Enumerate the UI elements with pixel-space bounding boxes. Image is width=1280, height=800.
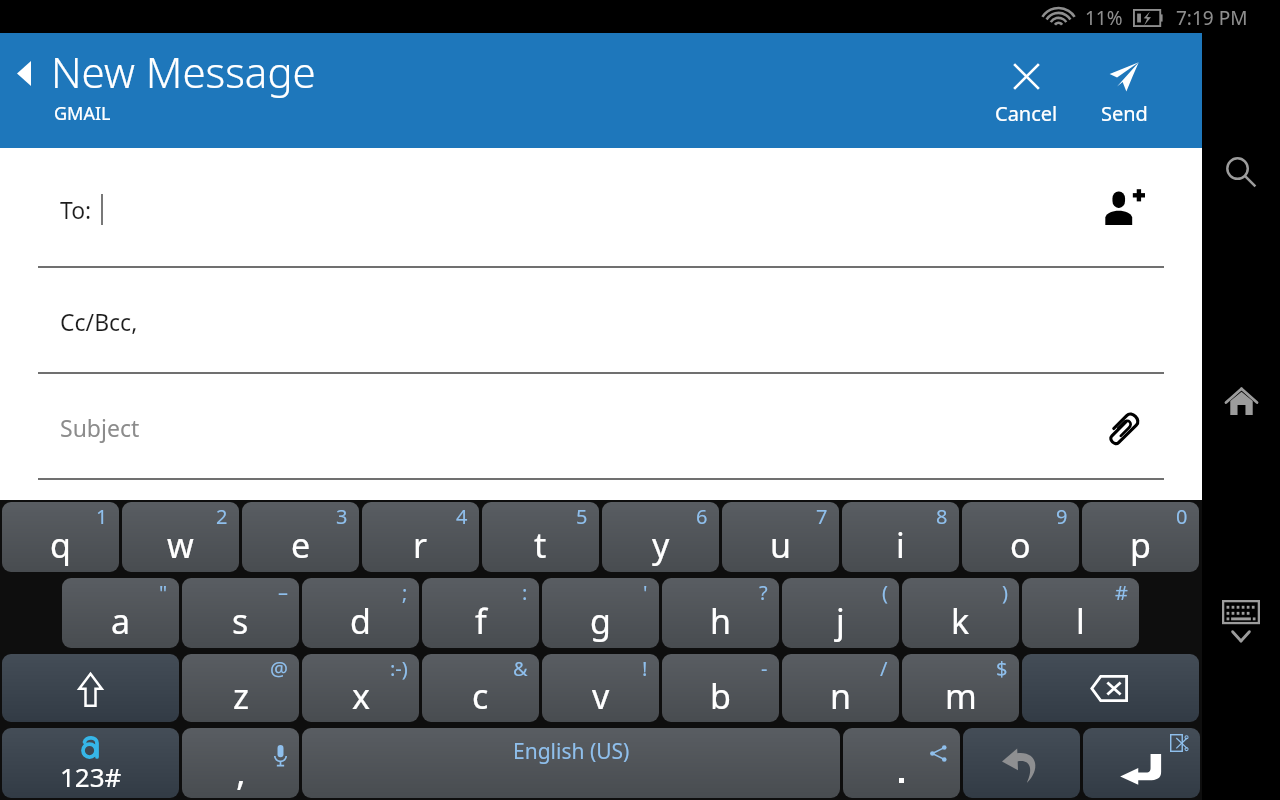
button[interactable]: o (962, 502, 1079, 572)
staticText: ! (642, 655, 648, 682)
staticText: " (159, 579, 168, 606)
staticText: i (896, 522, 905, 568)
staticText: z (233, 673, 249, 719)
staticText: / (880, 655, 888, 682)
button[interactable] (1022, 654, 1199, 722)
staticText: s (232, 598, 249, 644)
staticText: 11% (1085, 5, 1123, 31)
button[interactable]: English (US) (302, 728, 840, 798)
button[interactable]: y (602, 502, 719, 572)
staticText: n (830, 673, 852, 719)
staticText: ; (402, 579, 408, 606)
button[interactable]: Subject (0, 374, 1202, 480)
button[interactable]: 123# (2, 728, 179, 798)
staticText: 2 (216, 503, 228, 530)
button[interactable]: Back (6, 55, 42, 91)
staticText: p (1130, 522, 1151, 568)
staticText: r (413, 522, 428, 568)
staticText: j (836, 598, 845, 644)
staticText: t (534, 522, 547, 568)
button[interactable]: g (542, 578, 659, 648)
button[interactable]: z (182, 654, 299, 722)
staticText: Subject (60, 412, 140, 443)
staticText: ) (1002, 579, 1008, 606)
button[interactable]: w (122, 502, 239, 572)
staticText: @ (270, 655, 288, 682)
staticText: c (472, 673, 489, 719)
button[interactable]: Add contact (1097, 180, 1151, 234)
button[interactable]: p (1082, 502, 1199, 572)
button[interactable]: x (302, 654, 419, 722)
button[interactable]: t (482, 502, 599, 572)
staticText: f (475, 598, 487, 644)
staticText: # (1115, 579, 1128, 606)
button[interactable]: r (362, 502, 479, 572)
button[interactable]: Cancel (986, 61, 1066, 127)
button[interactable] (2, 654, 179, 722)
button[interactable]: Home (1217, 377, 1265, 425)
staticText: 5 (576, 503, 588, 530)
staticText: u (770, 522, 792, 568)
staticText: 7:19 PM (1176, 5, 1248, 31)
button[interactable]: b (662, 654, 779, 722)
staticText: b (710, 673, 731, 719)
button[interactable]: q (2, 502, 119, 572)
button[interactable]: c (422, 654, 539, 722)
staticText: 3 (336, 503, 348, 530)
button[interactable]: a (62, 578, 179, 648)
staticText: , (236, 747, 246, 796)
button[interactable]: v (542, 654, 659, 722)
staticText: – (278, 579, 288, 606)
staticText: 1 (96, 503, 108, 530)
button[interactable]: m (902, 654, 1019, 722)
button[interactable]: Search (1217, 148, 1265, 196)
button[interactable]: n (782, 654, 899, 722)
staticText: To: (60, 194, 92, 225)
button[interactable]: Cc/Bcc, (0, 268, 1202, 374)
staticText: e (291, 522, 311, 568)
staticText: & (513, 655, 528, 682)
staticText: : (522, 579, 528, 606)
staticText: ( (882, 579, 888, 606)
button[interactable]: j (782, 578, 899, 648)
staticText: ' (643, 579, 648, 606)
button[interactable] (1083, 728, 1200, 798)
staticText: 8 (936, 503, 948, 530)
button[interactable]: l (1022, 578, 1139, 648)
staticText: 4 (456, 503, 468, 530)
button[interactable] (843, 728, 960, 798)
staticText: 9 (1056, 503, 1068, 530)
staticText: GMAIL (54, 101, 111, 126)
staticText: o (1010, 522, 1031, 568)
staticText: h (710, 598, 732, 644)
staticText: 123# (60, 759, 122, 794)
button[interactable]: u (722, 502, 839, 572)
button[interactable]: h (662, 578, 779, 648)
button[interactable]: i (842, 502, 959, 572)
staticText: l (1076, 598, 1085, 644)
button[interactable]: e (242, 502, 359, 572)
button[interactable]: s (182, 578, 299, 648)
staticText: v (592, 673, 610, 719)
staticText: - (761, 655, 768, 682)
staticText: g (590, 598, 611, 644)
button[interactable] (963, 728, 1080, 798)
button[interactable]: k (902, 578, 1019, 648)
button[interactable]: Hide keyboard (1217, 598, 1265, 646)
staticText: ? (759, 579, 768, 606)
staticText: d (350, 598, 371, 644)
staticText: New Message (51, 43, 316, 100)
staticText: k (951, 598, 970, 644)
button[interactable]: To: (0, 148, 1202, 268)
staticText: :-) (390, 655, 408, 682)
staticText: Cancel (995, 100, 1058, 127)
button[interactable]: d (302, 578, 419, 648)
button[interactable]: Attach file (1097, 401, 1151, 455)
staticText: Cc/Bcc, (60, 306, 138, 337)
button[interactable]: Send (1084, 61, 1164, 127)
staticText: Send (1101, 100, 1148, 127)
staticText: 7 (816, 503, 828, 530)
button[interactable]: , (182, 728, 299, 798)
button[interactable]: f (422, 578, 539, 648)
staticText: 0 (1176, 503, 1188, 530)
